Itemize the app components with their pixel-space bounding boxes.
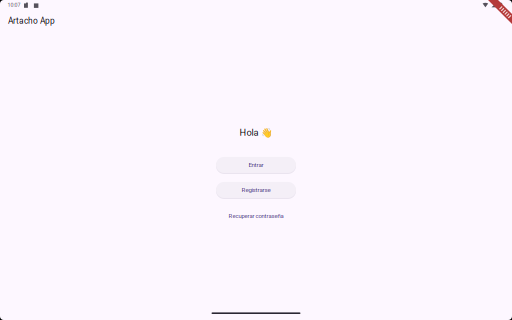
staticText: Artacho App <box>8 16 55 26</box>
button[interactable]: Recuperar contraseña <box>228 210 283 222</box>
button[interactable]: Registrarse <box>216 181 296 199</box>
staticText: Entrar <box>248 161 263 168</box>
staticText: Registrarse <box>241 186 270 193</box>
staticText: Recuperar contraseña <box>228 212 283 219</box>
button[interactable]: Entrar <box>216 156 296 174</box>
staticText: Hola 👋 <box>239 127 272 138</box>
staticText: 10:07 <box>7 2 20 8</box>
